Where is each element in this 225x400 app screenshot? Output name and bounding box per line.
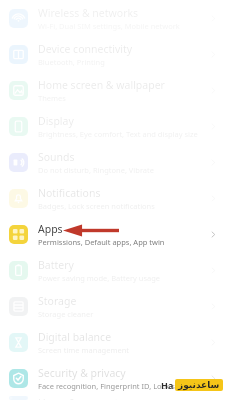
staticText: Permissions, Default apps, App twin bbox=[38, 237, 165, 247]
button[interactable]: Wireless & networks bbox=[0, 0, 225, 36]
staticText: Storage bbox=[38, 294, 77, 308]
staticText: Security & privacy bbox=[38, 366, 126, 380]
button[interactable]: Users & accounts bbox=[0, 396, 225, 400]
staticText: Do not disturb, Ringtone, Vibrate bbox=[38, 165, 155, 175]
staticText: Themes bbox=[38, 93, 66, 103]
button[interactable]: Storage bbox=[0, 288, 225, 324]
staticText: Sounds bbox=[38, 150, 75, 164]
button[interactable]: Digital balance bbox=[0, 324, 225, 360]
staticText: Apps bbox=[38, 222, 63, 236]
staticText: Device connectivity bbox=[38, 42, 133, 56]
staticText: Display bbox=[38, 114, 74, 128]
button[interactable]: Home screen & wallpaper bbox=[0, 72, 225, 108]
button[interactable]: Device connectivity bbox=[0, 36, 225, 72]
staticText: Wireless & networks bbox=[38, 6, 139, 20]
staticText: Power saving mode, Battery usage bbox=[38, 273, 161, 283]
staticText: Notifications bbox=[38, 186, 101, 200]
staticText: Badges, Lock screen notifications bbox=[38, 201, 155, 211]
staticText: Face recognition, Fingerprint ID, Lock s… bbox=[38, 381, 205, 391]
staticText: Storage cleaner bbox=[38, 309, 94, 319]
staticText: Ha bbox=[161, 379, 174, 391]
staticText: Bluetooth, Printing bbox=[38, 57, 105, 67]
staticText: Brightness, Eye comfort, Text and displa… bbox=[38, 129, 198, 139]
button[interactable]: Apps bbox=[0, 216, 225, 252]
staticText: Battery bbox=[38, 258, 74, 272]
staticText: Screen time management bbox=[38, 345, 130, 355]
staticText: Home screen & wallpaper bbox=[38, 78, 165, 92]
button[interactable]: Notifications bbox=[0, 180, 225, 216]
staticText: ساعدنیوز bbox=[178, 380, 220, 390]
staticText: Digital balance bbox=[38, 330, 112, 344]
button[interactable]: Display bbox=[0, 108, 225, 144]
button[interactable]: Security & privacy bbox=[0, 360, 225, 396]
button[interactable]: Battery bbox=[0, 252, 225, 288]
button[interactable]: Sounds bbox=[0, 144, 225, 180]
